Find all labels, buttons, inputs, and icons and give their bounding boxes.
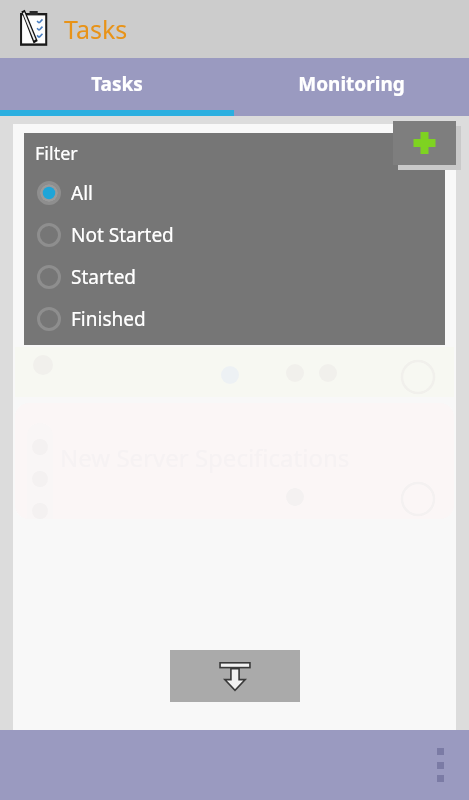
staticText: Monitoring [298, 71, 405, 97]
staticText: Tasks [64, 12, 128, 46]
button[interactable]: All [24, 172, 445, 214]
button[interactable]: Not Started [24, 214, 445, 256]
staticText: Filter [35, 141, 78, 166]
staticText: Finished [71, 306, 146, 332]
button[interactable]: More options [430, 748, 450, 782]
button[interactable]: Started [24, 256, 445, 298]
button[interactable]: Add task [393, 121, 463, 171]
staticText: Started [71, 264, 137, 290]
button[interactable]: Monitoring [234, 58, 469, 110]
button[interactable]: Tasks [0, 58, 234, 110]
staticText: All [71, 180, 93, 206]
button[interactable]: Finished [24, 298, 445, 340]
button[interactable]: Load more [170, 650, 300, 702]
staticText: Tasks [91, 71, 143, 97]
staticText: Not Started [71, 222, 174, 248]
